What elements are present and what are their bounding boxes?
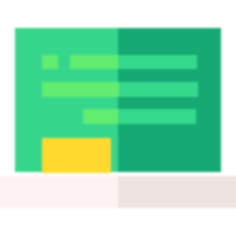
button[interactable]: Featured card (15, 28, 221, 172)
button[interactable]: Headline (70, 55, 197, 69)
button[interactable]: Body line two (83, 109, 196, 124)
button[interactable]: Body line one (42, 82, 197, 97)
button[interactable]: Primary action (42, 138, 111, 173)
button[interactable]: Thumbnail (42, 55, 58, 69)
button[interactable]: Bottom bar (0, 176, 236, 208)
